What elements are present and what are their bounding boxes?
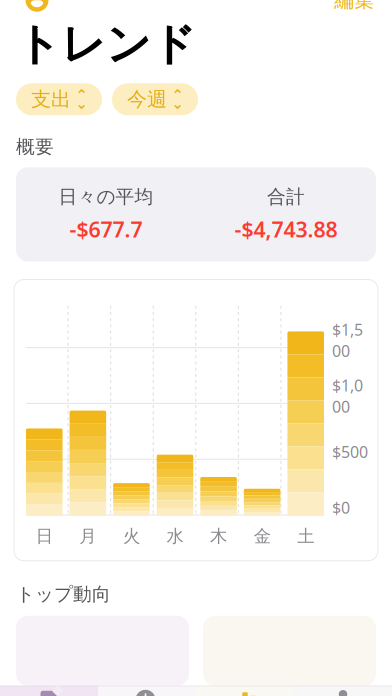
staticText: -$677.7 <box>69 215 142 243</box>
staticText: ⌄ <box>75 95 87 112</box>
staticText: ⌃ <box>75 87 87 103</box>
button[interactable]: ホーム <box>294 686 392 696</box>
staticText: トップ動向 <box>16 583 111 606</box>
button[interactable]: 編集 <box>332 0 376 18</box>
staticText: 月 <box>79 525 96 547</box>
staticText: 概要 <box>16 135 54 158</box>
staticText: 日 <box>36 525 53 547</box>
button[interactable]: Profile <box>20 0 54 17</box>
staticText: 火 <box>123 525 140 547</box>
button[interactable]: 取引 <box>0 686 98 696</box>
staticText: 今週 <box>127 87 167 112</box>
staticText: 水 <box>166 525 183 547</box>
staticText: トレンド <box>16 17 196 71</box>
staticText: -$4,743.88 <box>234 215 337 243</box>
staticText: ⌃ <box>171 87 183 103</box>
staticText: 木 <box>210 525 227 547</box>
staticText: 合計 <box>267 185 305 208</box>
staticText: $500 <box>332 441 368 462</box>
staticText: $1,500 <box>332 319 363 361</box>
button[interactable]: 支出 <box>16 83 102 115</box>
button[interactable]: トレンド <box>196 686 294 696</box>
button[interactable]: 計画 <box>98 686 196 696</box>
staticText: $1,000 <box>332 375 363 417</box>
staticText: 金 <box>254 525 271 547</box>
staticText: ⌄ <box>171 95 183 112</box>
button[interactable]: 今週 <box>112 83 198 115</box>
staticText: $0 <box>332 497 350 518</box>
staticText: 土 <box>297 525 314 547</box>
staticText: 支出 <box>31 87 71 112</box>
staticText: 編集 <box>334 0 374 13</box>
staticText: 日々の平均 <box>58 185 153 208</box>
